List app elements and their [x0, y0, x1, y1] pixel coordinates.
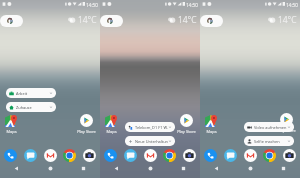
button[interactable]: Messages [124, 149, 137, 162]
button[interactable]: Home [246, 164, 255, 173]
button[interactable]: Zuhause [6, 102, 56, 112]
button[interactable]: Camera [183, 149, 196, 162]
button[interactable]: Camera [83, 149, 96, 162]
staticText: Maps [206, 129, 217, 134]
button[interactable]: Gmail [244, 149, 257, 162]
staticText: Neue Unterhaltung [135, 139, 168, 144]
staticText: 14:50 [86, 2, 98, 8]
button[interactable]: Google search [0, 15, 23, 27]
staticText: 14:50 [286, 2, 298, 8]
button[interactable]: Phone [4, 149, 17, 162]
button[interactable]: Maps [100, 114, 123, 134]
button[interactable]: Home [146, 164, 155, 173]
button[interactable]: Messages [24, 149, 37, 162]
button[interactable]: Recents [79, 164, 88, 173]
button[interactable]: Recents [179, 164, 188, 173]
staticText: Telekom_D1 F1 W… [135, 125, 168, 130]
button[interactable]: Camera [283, 149, 296, 162]
button[interactable]: Play Store [275, 113, 298, 133]
button[interactable]: Recents [279, 164, 288, 173]
staticText: 14°C [178, 14, 197, 25]
button[interactable]: Back [212, 164, 221, 173]
staticText: 14°C [78, 14, 97, 25]
staticText: Play Store [277, 128, 296, 133]
button[interactable]: Messages [224, 149, 237, 162]
button[interactable]: Back [12, 164, 21, 173]
button[interactable]: Google search [200, 15, 223, 27]
staticText: Video aufnehmen [254, 125, 287, 130]
staticText: Play Store [77, 129, 96, 134]
button[interactable]: Home [46, 164, 55, 173]
button[interactable]: Selfie machen [244, 136, 294, 146]
staticText: Maps [6, 129, 17, 134]
button[interactable]: Telekom_D1 F1 W… [125, 122, 175, 132]
button[interactable]: Gmail [44, 149, 57, 162]
button[interactable]: Video aufnehmen [244, 122, 294, 132]
button[interactable]: Maps [200, 114, 223, 134]
button[interactable]: Arbeit [6, 88, 56, 98]
staticText: Arbeit [16, 91, 49, 96]
button[interactable]: Phone [104, 149, 117, 162]
button[interactable]: Chrome [63, 149, 76, 162]
staticText: Maps [106, 129, 117, 134]
staticText: 14:50 [186, 2, 198, 8]
button[interactable]: Play Store [175, 114, 198, 134]
staticText: Play Store [177, 129, 196, 134]
button[interactable]: 14°C [167, 14, 197, 25]
button[interactable]: Play Store [75, 114, 98, 134]
button[interactable]: Gmail [144, 149, 157, 162]
staticText: Selfie machen [254, 139, 287, 144]
button[interactable]: Maps [0, 114, 23, 134]
button[interactable]: Google search [100, 15, 123, 27]
button[interactable]: Back [112, 164, 121, 173]
button[interactable]: Neue Unterhaltung [125, 136, 175, 146]
button[interactable]: Chrome [263, 149, 276, 162]
button[interactable]: Chrome [163, 149, 176, 162]
button[interactable]: 14°C [267, 14, 297, 25]
button[interactable]: 14°C [67, 14, 97, 25]
staticText: Zuhause [16, 105, 49, 110]
button[interactable]: Phone [204, 149, 217, 162]
staticText: 14°C [278, 14, 297, 25]
